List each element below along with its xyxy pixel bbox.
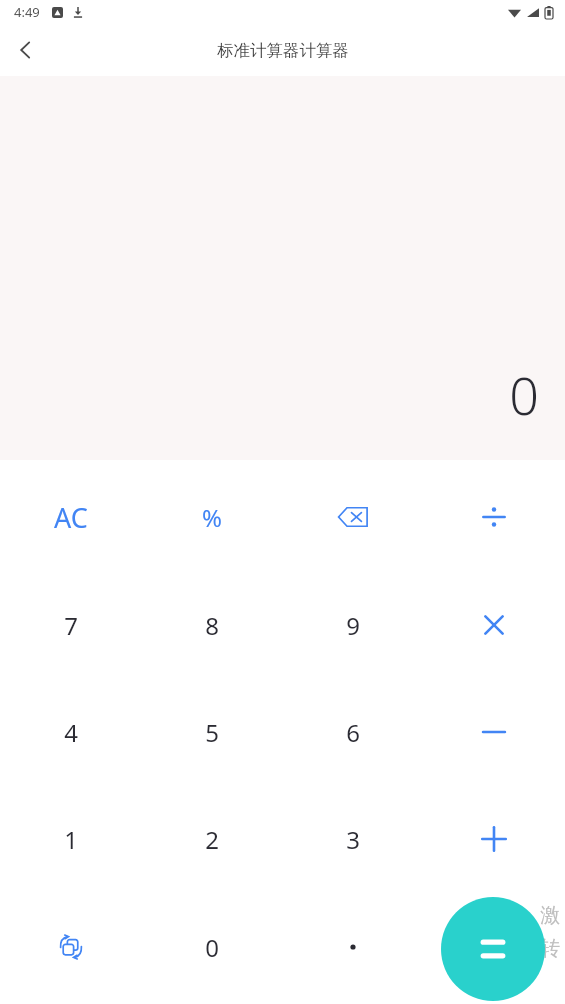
staticText: 4 (64, 716, 78, 749)
button[interactable]: Backspace (282, 467, 423, 567)
button[interactable]: 6 (282, 682, 423, 782)
staticText: % (202, 501, 222, 534)
staticText: AC (54, 499, 88, 536)
button[interactable]: Plus (423, 789, 564, 889)
button[interactable]: 7 (0, 575, 141, 675)
button[interactable]: Decimal point (282, 897, 423, 997)
staticText: 5 (205, 716, 219, 749)
staticText: 0 (509, 359, 539, 430)
button[interactable]: Convert units (0, 897, 141, 997)
button[interactable]: 8 (141, 575, 282, 675)
button[interactable]: Equals (441, 897, 545, 1001)
button[interactable]: 3 (282, 789, 423, 889)
button[interactable]: Divide (423, 467, 564, 567)
button[interactable]: 2 (141, 789, 282, 889)
staticText: 1 (64, 823, 78, 856)
staticText: 转 (540, 936, 560, 961)
button[interactable]: % (141, 467, 282, 567)
staticText: 8 (205, 609, 219, 642)
button[interactable]: 9 (282, 575, 423, 675)
staticText: 2 (205, 823, 219, 856)
button[interactable]: 5 (141, 682, 282, 782)
button[interactable]: Multiply (423, 575, 564, 675)
staticText: 6 (346, 716, 360, 749)
staticText: 4:49 (14, 3, 40, 21)
button[interactable]: Back (0, 24, 52, 76)
staticText: 标准计算器计算器 (217, 40, 349, 61)
button[interactable]: 1 (0, 789, 141, 889)
staticText: 0 (205, 931, 219, 964)
button[interactable]: AC (0, 467, 141, 567)
staticText: 3 (346, 823, 360, 856)
button[interactable]: 4 (0, 682, 141, 782)
button[interactable]: Minus (423, 682, 564, 782)
staticText: 9 (346, 609, 360, 642)
staticText: 7 (64, 609, 78, 642)
staticText: 激 (540, 903, 560, 928)
button[interactable]: 0 (141, 897, 282, 997)
